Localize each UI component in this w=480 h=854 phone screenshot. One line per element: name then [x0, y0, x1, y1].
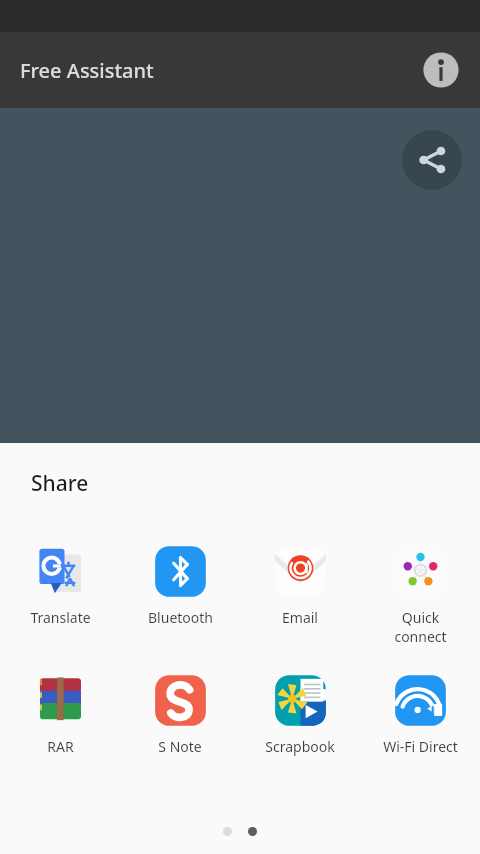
button[interactable]: S Note	[120, 670, 240, 758]
button[interactable]: Share	[402, 130, 462, 190]
staticText: Scrapbook	[265, 737, 335, 756]
button[interactable]: Wi-Fi Direct	[360, 670, 480, 758]
staticText: Free Assistant	[20, 57, 154, 84]
button[interactable]: Translate	[0, 541, 120, 629]
button[interactable]: RAR	[0, 670, 120, 758]
button[interactable]: Email	[240, 541, 360, 629]
staticText: Quick connect	[394, 608, 447, 646]
staticText: Translate	[30, 608, 91, 627]
staticText: Email	[282, 608, 318, 627]
button[interactable]: Info	[419, 48, 463, 92]
staticText: Share	[31, 469, 89, 498]
staticText: RAR	[47, 737, 74, 756]
button[interactable]: Bluetooth	[120, 541, 240, 629]
button[interactable]: Scrapbook	[240, 670, 360, 758]
staticText: S Note	[158, 737, 202, 756]
staticText: Bluetooth	[148, 608, 213, 627]
button[interactable]: Quick connect	[360, 541, 480, 648]
staticText: Wi-Fi Direct	[383, 737, 458, 756]
